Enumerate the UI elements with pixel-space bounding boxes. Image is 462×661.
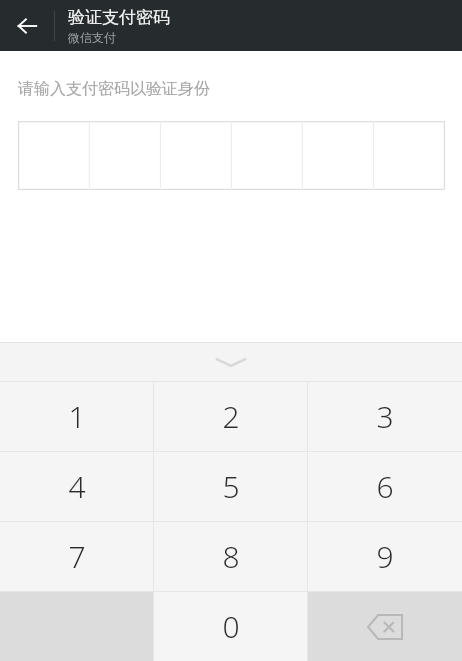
button[interactable] <box>374 121 445 190</box>
button[interactable] <box>303 121 374 190</box>
staticText: 9 <box>376 536 394 577</box>
staticText: 2 <box>222 396 240 437</box>
button[interactable]: 4 <box>0 452 154 521</box>
button[interactable] <box>161 121 232 190</box>
staticText: 0 <box>222 606 240 647</box>
staticText: 7 <box>68 536 86 577</box>
staticText: 1 <box>68 396 86 437</box>
button[interactable]: 5 <box>154 452 308 521</box>
button[interactable]: Delete <box>308 592 462 661</box>
staticText: 请输入支付密码以验证身份 <box>18 79 210 99</box>
button[interactable]: 1 <box>0 382 154 451</box>
button[interactable] <box>90 121 161 190</box>
staticText: 8 <box>222 536 240 577</box>
staticText: 5 <box>222 466 240 507</box>
button[interactable]: 6 <box>308 452 462 521</box>
button[interactable]: 8 <box>154 522 308 591</box>
staticText: 3 <box>376 396 394 437</box>
staticText: 验证支付密码 <box>68 7 170 28</box>
staticText: 4 <box>68 466 86 507</box>
button[interactable] <box>232 121 303 190</box>
button[interactable]: 7 <box>0 522 154 591</box>
staticText: 微信支付 <box>68 30 116 45</box>
button[interactable]: 9 <box>308 522 462 591</box>
button[interactable]: 2 <box>154 382 308 451</box>
button[interactable] <box>18 121 90 190</box>
button[interactable]: 3 <box>308 382 462 451</box>
button[interactable]: 0 <box>154 592 308 661</box>
button[interactable]: Back <box>0 0 54 51</box>
staticText: 6 <box>376 466 394 507</box>
